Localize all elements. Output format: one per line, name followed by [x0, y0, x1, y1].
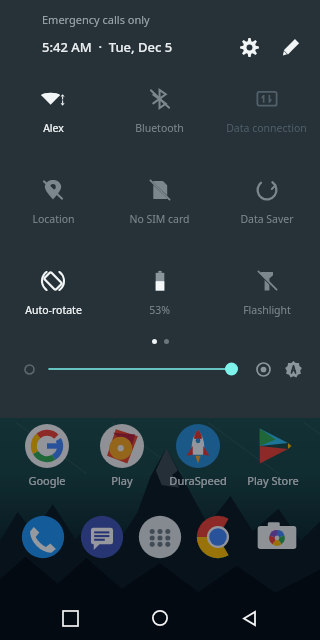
button[interactable]: Recents: [50, 598, 90, 638]
button[interactable]: Google: [12, 424, 82, 488]
button[interactable]: DuraSpeed: [163, 424, 233, 488]
staticText: Alex: [43, 121, 64, 135]
button[interactable]: Alex: [0, 84, 106, 137]
button[interactable]: No SIM card: [106, 175, 213, 228]
button[interactable]: Brightness: [49, 358, 238, 380]
button[interactable]: Back: [230, 598, 270, 638]
staticText: Data connection: [226, 121, 307, 135]
staticText: Emergency calls only: [42, 12, 150, 27]
button[interactable]: Phone: [20, 514, 66, 560]
staticText: Play: [111, 473, 133, 488]
button[interactable]: Location: [0, 175, 106, 228]
staticText: 5:42 AM · Tue, Dec 5: [42, 38, 173, 56]
button[interactable]: 53%: [106, 266, 213, 319]
staticText: Location: [32, 212, 75, 226]
button[interactable]: Flashlight: [213, 266, 320, 319]
button[interactable]: Data connection: [213, 84, 320, 137]
button[interactable]: Auto-rotate: [0, 266, 106, 319]
staticText: Play Store: [247, 473, 299, 488]
staticText: Google: [28, 473, 66, 488]
button[interactable]: Home: [140, 598, 180, 638]
button[interactable]: Messages: [79, 514, 125, 560]
button[interactable]: Camera: [254, 514, 300, 560]
button[interactable]: Data Saver: [213, 175, 320, 228]
button[interactable]: Edit tiles: [276, 32, 306, 62]
button[interactable]: Brightness level: [252, 358, 274, 380]
staticText: Bluetooth: [135, 121, 184, 135]
button[interactable]: All apps: [137, 514, 183, 560]
button[interactable]: Play Store: [238, 424, 308, 488]
staticText: No SIM card: [129, 212, 190, 226]
staticText: Flashlight: [243, 303, 291, 317]
button[interactable]: Chrome: [195, 514, 241, 560]
button[interactable]: Play: [87, 424, 157, 488]
button[interactable]: Settings: [234, 32, 264, 62]
staticText: DuraSpeed: [169, 473, 227, 488]
button[interactable]: Auto brightness: [282, 358, 304, 380]
staticText: Data Saver: [240, 212, 294, 226]
staticText: Auto-rotate: [25, 303, 82, 317]
button[interactable]: Bluetooth: [106, 84, 213, 137]
staticText: 53%: [149, 303, 170, 317]
